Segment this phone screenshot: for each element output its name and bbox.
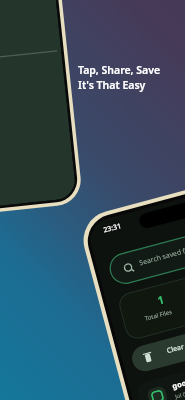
button[interactable]: Tap, Share, Save promo	[0, 0, 185, 400]
